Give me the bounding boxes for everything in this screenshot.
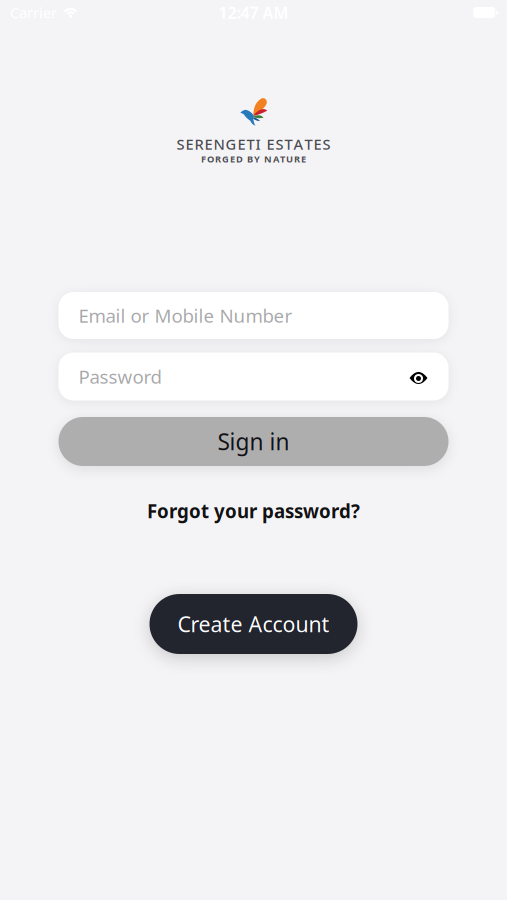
button[interactable]: Show password xyxy=(409,370,427,383)
staticText: Create Account xyxy=(177,610,329,638)
button[interactable]: Email or Mobile Number xyxy=(58,292,448,339)
staticText: Email or Mobile Number xyxy=(78,303,292,328)
button[interactable]: Password xyxy=(58,352,448,400)
button[interactable]: Sign in xyxy=(58,417,448,466)
staticText: F O R G E D B Y N A T U R E xyxy=(201,153,306,165)
staticText: S E R E N G E T I E S T A T E S xyxy=(176,134,330,154)
staticText: Forgot your password? xyxy=(147,499,360,523)
staticText: Sign in xyxy=(217,426,289,456)
staticText: 12:47 AM xyxy=(218,2,288,23)
staticText: Password xyxy=(78,364,161,389)
staticText: Carrier xyxy=(10,3,57,22)
button[interactable]: Create Account xyxy=(149,594,357,654)
button[interactable]: Forgot your password? xyxy=(147,501,360,521)
